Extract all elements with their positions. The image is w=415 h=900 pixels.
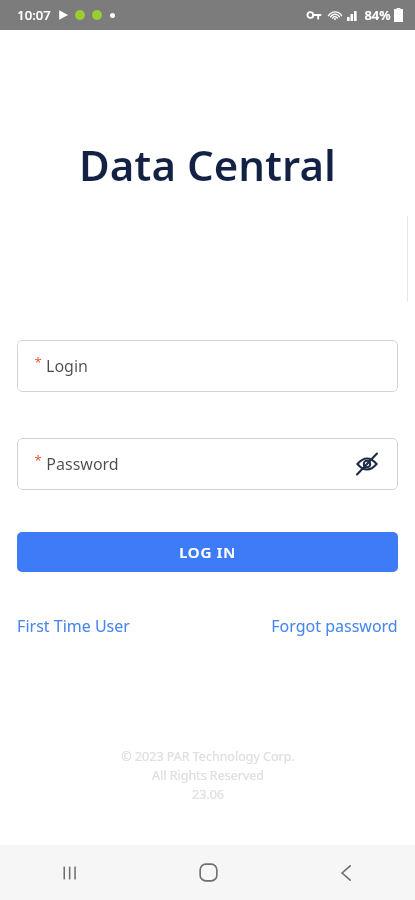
staticText: © 2023 PAR Technology Corp. <box>121 748 295 765</box>
button[interactable]: Show password <box>350 447 384 481</box>
staticText: Forgot password <box>271 615 398 637</box>
button[interactable]: First Time User <box>17 612 130 640</box>
staticText: Login <box>46 355 88 377</box>
button[interactable]: Home <box>139 845 277 900</box>
staticText: 84% <box>364 6 391 24</box>
button[interactable]: Back <box>277 845 415 900</box>
staticText: Password <box>46 453 119 475</box>
button[interactable]: Recent apps <box>0 845 139 900</box>
staticText: First Time User <box>17 615 130 637</box>
staticText: Data Central <box>79 136 336 193</box>
button[interactable]: LOG IN <box>17 532 398 572</box>
button[interactable]: * <box>17 340 398 392</box>
staticText: * <box>34 451 42 469</box>
staticText: All Rights Reserved <box>152 767 264 784</box>
button[interactable]: Forgot password <box>271 612 398 640</box>
staticText: LOG IN <box>179 542 236 562</box>
button[interactable]: * <box>17 438 398 490</box>
staticText: * <box>34 353 42 371</box>
staticText: 23.06 <box>192 786 224 803</box>
staticText: 10:07 <box>17 6 51 24</box>
